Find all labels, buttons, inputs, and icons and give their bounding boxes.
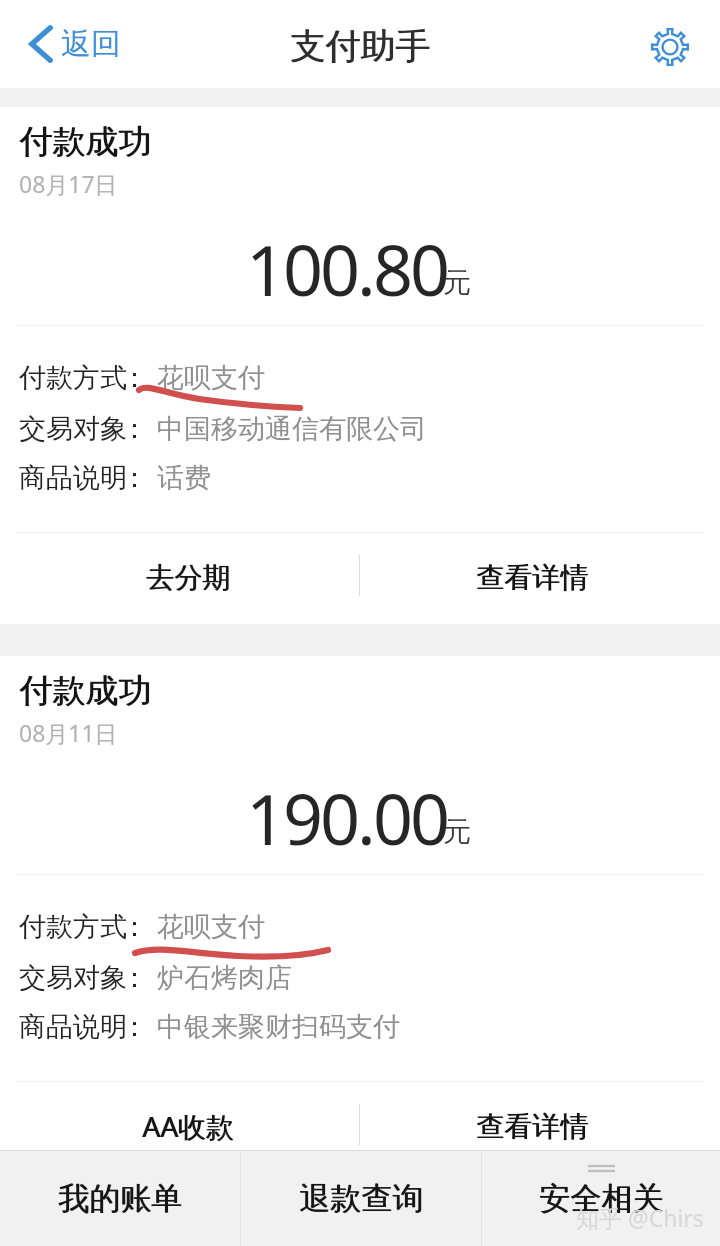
staticText: 支付助手 xyxy=(290,24,430,68)
staticText: ： xyxy=(121,910,148,944)
staticText: ： xyxy=(121,961,148,995)
staticText: 查看详情 xyxy=(477,560,589,595)
staticText: 中国移动通信有限公司 xyxy=(157,412,427,446)
button[interactable]: Settings xyxy=(626,3,714,91)
staticText: 去分期 xyxy=(147,560,231,595)
staticText: 08月11日 xyxy=(19,717,118,748)
button[interactable]: 安全相关 xyxy=(482,1150,720,1246)
staticText: 元 xyxy=(443,265,471,300)
staticText: AA收款 xyxy=(143,1107,235,1145)
staticText: 知乎 @Chirs xyxy=(576,1202,704,1233)
staticText: ： xyxy=(121,361,148,395)
staticText: 付款成功 xyxy=(20,121,152,163)
staticText: 去分期 xyxy=(146,560,230,595)
staticText: 付款成功 xyxy=(19,670,151,712)
button[interactable]: 返回 xyxy=(29,0,121,88)
staticText: 查看详情 xyxy=(476,560,588,595)
staticText: 元 xyxy=(443,814,471,849)
staticText: 返回 xyxy=(61,25,121,63)
staticText: 08月17日 xyxy=(19,168,118,199)
staticText: 支付助手 xyxy=(291,24,431,68)
button[interactable]: 我的账单 xyxy=(0,1150,240,1246)
staticText: 商品说明 xyxy=(19,1010,127,1044)
staticText: 付款方式 xyxy=(19,910,127,944)
staticText: 花呗支付 xyxy=(157,361,265,395)
staticText: 我的账单 xyxy=(58,1179,182,1218)
staticText: 付款方式 xyxy=(19,361,127,395)
staticText: 付款成功 xyxy=(19,121,151,163)
staticText: 退款查询 xyxy=(300,1179,424,1218)
staticText: 中银来聚财扫码支付 xyxy=(157,1010,400,1044)
staticText: 安全相关 xyxy=(539,1179,663,1218)
staticText: 190.00 xyxy=(246,770,447,865)
staticText: ： xyxy=(121,412,148,446)
staticText: 花呗支付 xyxy=(157,910,265,944)
staticText: 查看详情 xyxy=(477,1109,589,1144)
staticText: ： xyxy=(121,1010,148,1044)
staticText: 炉石烤肉店 xyxy=(157,961,292,995)
staticText: ： xyxy=(121,461,148,495)
button[interactable]: 退款查询 xyxy=(241,1150,481,1246)
staticText: 安全相关 xyxy=(540,1179,664,1218)
staticText: 我的账单 xyxy=(59,1179,183,1218)
staticText: 退款查询 xyxy=(299,1179,423,1218)
staticText: 查看详情 xyxy=(476,1109,588,1144)
staticText: AA收款 xyxy=(142,1107,234,1145)
button[interactable]: 查看详情 xyxy=(359,1082,720,1170)
staticText: 100.80 xyxy=(246,221,447,316)
button[interactable]: 查看详情 xyxy=(359,533,720,621)
button[interactable]: 去分期 xyxy=(0,533,359,621)
staticText: 交易对象 xyxy=(19,412,127,446)
staticText: 话费 xyxy=(157,461,211,495)
button[interactable]: AA收款 xyxy=(0,1082,359,1170)
staticText: 付款成功 xyxy=(20,670,152,712)
staticText: 交易对象 xyxy=(19,961,127,995)
staticText: 商品说明 xyxy=(19,461,127,495)
